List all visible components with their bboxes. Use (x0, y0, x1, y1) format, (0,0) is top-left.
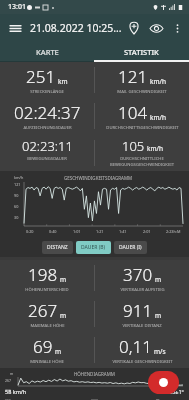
staticText: VERTIKALER AUFSTIEG (120, 287, 165, 293)
staticText: 58 km/h (5, 388, 27, 395)
staticText: DURCHSCHNITTLICHE BEWEGUNGSGESCHWINDIGKE… (95, 156, 189, 168)
staticText: 121 (118, 65, 148, 88)
button[interactable]: STATISTIK (94, 42, 189, 62)
staticText: m (155, 311, 162, 320)
button[interactable]: Visibility (145, 17, 167, 39)
button[interactable]: 267 (0, 296, 189, 332)
staticText: BEWEGUNGSDAUER (27, 156, 67, 162)
staticText: 0:40 (49, 229, 57, 234)
staticText: 911 (123, 299, 153, 322)
staticText: MINIMALE HÖHE (30, 359, 64, 365)
staticText: km/h (150, 77, 166, 86)
staticText: 0,11 (119, 335, 152, 358)
button[interactable]: 198 (0, 260, 189, 296)
staticText: 198 (28, 263, 58, 286)
staticText: MAX. GESCHWINDIGKEIT (117, 89, 167, 95)
staticText: VERTIKALE DISTANZ (122, 323, 162, 329)
staticText: KARTE (36, 47, 59, 57)
staticText: STRECKENLÄNGE (30, 89, 64, 95)
staticText: DAUER (B) (81, 244, 106, 251)
staticText: GESCHWINDIGKEITSDIAGRAMM (64, 175, 133, 181)
staticText: VERTIKALE GESCHWINDIGKEIT (112, 359, 173, 365)
button[interactable]: More options (167, 18, 187, 38)
staticText: km/h (150, 113, 166, 122)
staticText: HÖHENUNTERSCHIED (25, 287, 69, 293)
staticText: AUFZEICHNUNGSDAUER (23, 125, 72, 131)
staticText: m (55, 347, 62, 356)
button[interactable]: 69 (0, 332, 189, 368)
staticText: 21.08.2022 10:25… (30, 21, 122, 35)
staticText: 1:41 (119, 229, 127, 234)
staticText: DAUER (I) (119, 244, 142, 251)
staticText: 13:01 (8, 2, 26, 12)
staticText: 2:01 (143, 229, 151, 234)
staticText: km (58, 77, 68, 86)
staticText: m (10, 371, 14, 376)
button[interactable]: 02:23:11 (0, 134, 189, 171)
button[interactable]: KARTE (0, 42, 94, 62)
staticText: 69 (33, 335, 53, 358)
staticText: 104 (118, 101, 148, 124)
staticText: 90 (14, 193, 19, 198)
staticText: 2:23h:M (166, 229, 181, 234)
staticText: 02:24:37 (14, 101, 81, 124)
staticText: m (60, 275, 67, 284)
staticText: 1:01 (73, 229, 81, 234)
staticText: STATISTIK (124, 47, 159, 57)
staticText: 267 (28, 299, 58, 322)
staticText: 166 (5, 398, 12, 400)
staticText: m (155, 275, 162, 284)
staticText: DISTANZ (47, 244, 68, 251)
staticText: m (60, 311, 67, 320)
staticText: 121 (14, 182, 21, 187)
staticText: DURCHSCHNITTSGESCHWINDIGKEIT (106, 125, 179, 131)
staticText: 105 (122, 137, 145, 155)
staticText: 0:20 (26, 229, 34, 234)
button[interactable]: Menu (4, 17, 26, 39)
staticText: MAXIMALE HÖHE (30, 323, 65, 329)
staticText: 370 (123, 263, 153, 286)
staticText: km/h (14, 175, 24, 180)
staticText: 02:23:11 (22, 137, 73, 155)
button[interactable]: Record (148, 371, 179, 394)
staticText: 60 (14, 204, 19, 209)
staticText: 35±1° (169, 388, 184, 395)
button[interactable]: Add waypoint (123, 17, 145, 39)
button[interactable]: DAUER (I) (114, 241, 147, 254)
staticText: 30 (14, 215, 19, 220)
staticText: m/s (154, 347, 166, 356)
staticText: 251 (26, 65, 56, 88)
button[interactable]: 251 (0, 62, 189, 98)
staticText: 267 (5, 378, 12, 383)
button[interactable]: DISTANZ (42, 241, 73, 254)
staticText: km/h (147, 144, 163, 153)
button[interactable]: 02:24:37 (0, 98, 189, 134)
button[interactable]: DAUER (B) (76, 241, 111, 254)
staticText: 1:21 (96, 229, 104, 234)
staticText: HÖHENDIAGRAMM (74, 371, 115, 377)
staticText: 216 (5, 388, 12, 393)
